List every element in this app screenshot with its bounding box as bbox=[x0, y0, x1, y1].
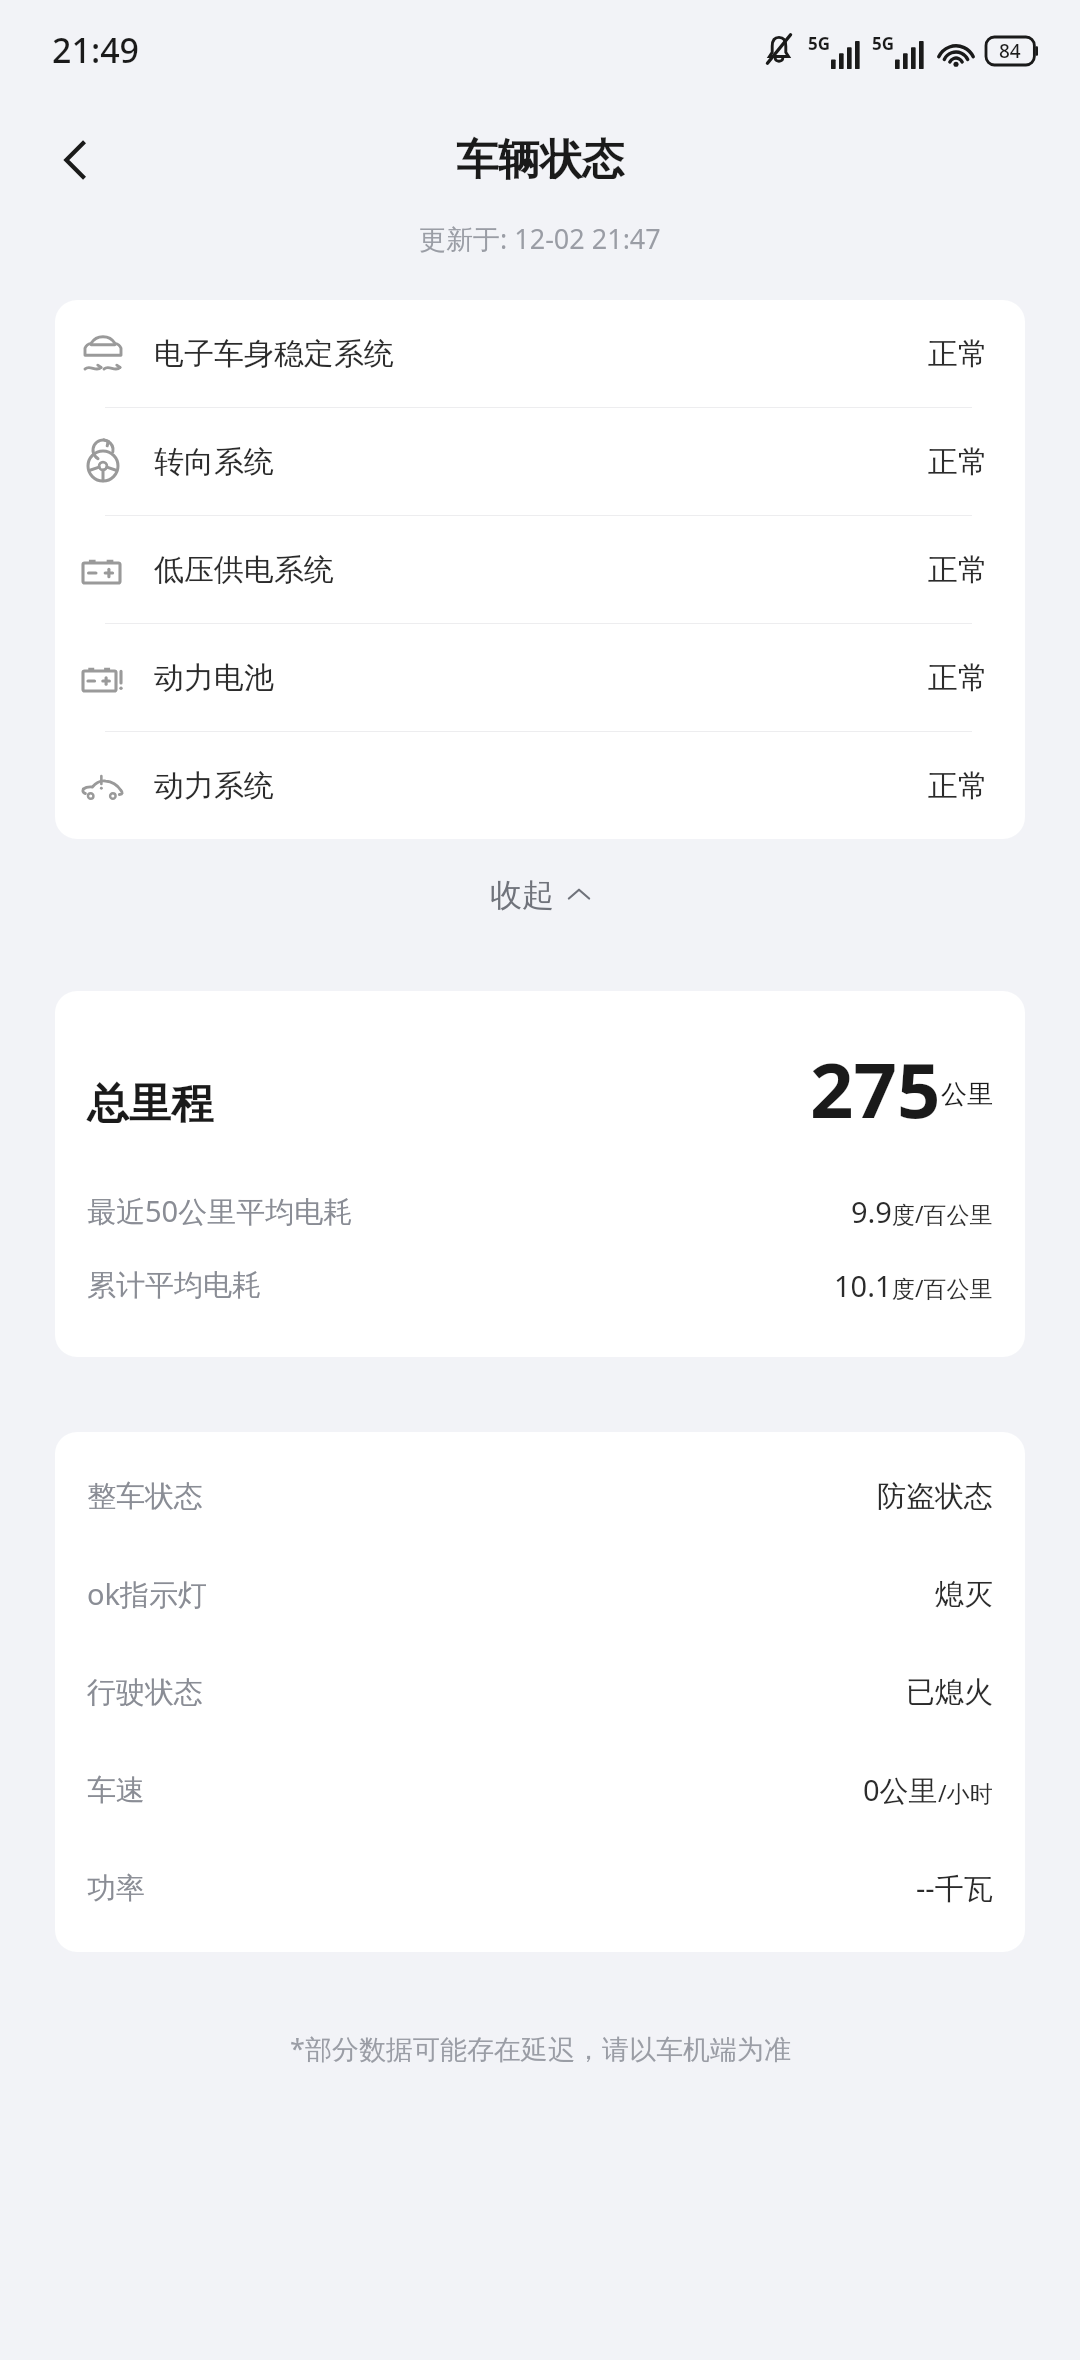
staticText: 整车状态 bbox=[87, 1478, 877, 1515]
staticText: 10.1 bbox=[834, 1266, 892, 1305]
staticText: 5G bbox=[872, 32, 895, 55]
button[interactable]: 低压供电系统 bbox=[55, 516, 1025, 623]
staticText: 正常 bbox=[928, 551, 988, 589]
staticText: 已熄火 bbox=[906, 1674, 993, 1711]
staticText: 21:49 bbox=[52, 27, 140, 73]
button[interactable]: 收起 bbox=[464, 861, 616, 929]
staticText: 正常 bbox=[928, 659, 988, 697]
staticText: 防盗状态 bbox=[877, 1478, 993, 1515]
staticText: 车辆状态 bbox=[456, 134, 624, 187]
button[interactable]: 动力系统 bbox=[55, 732, 1025, 839]
button[interactable]: 累计平均电耗 bbox=[87, 1251, 993, 1319]
button[interactable]: 整车状态 bbox=[87, 1462, 993, 1530]
staticText: *部分数据可能存在延迟，请以车机端为准 bbox=[290, 2030, 791, 2067]
button[interactable]: 最近50公里平均电耗 bbox=[87, 1177, 993, 1245]
button[interactable]: 总里程 bbox=[87, 1037, 993, 1141]
staticText: 275 bbox=[810, 1037, 941, 1141]
button[interactable]: Back bbox=[36, 120, 116, 200]
staticText: 累计平均电耗 bbox=[87, 1267, 834, 1304]
staticText: 0公里 bbox=[863, 1770, 938, 1810]
staticText: 5G bbox=[808, 32, 831, 55]
button[interactable]: 电子车身稳定系统 bbox=[55, 300, 1025, 407]
staticText: 最近50公里平均电耗 bbox=[87, 1191, 851, 1231]
staticText: 功率 bbox=[87, 1870, 916, 1907]
staticText: 电子车身稳定系统 bbox=[154, 335, 928, 373]
staticText: 公里 bbox=[941, 1078, 993, 1111]
staticText: 动力电池 bbox=[154, 659, 928, 697]
staticText: 总里程 bbox=[87, 1078, 213, 1131]
staticText: 更新于: 12-02 21:47 bbox=[419, 220, 661, 257]
staticText: ok指示灯 bbox=[87, 1574, 935, 1614]
staticText: --千瓦 bbox=[916, 1868, 993, 1908]
staticText: 度/百公里 bbox=[892, 1272, 993, 1303]
button[interactable]: 动力电池 bbox=[55, 624, 1025, 731]
staticText: /小时 bbox=[938, 1777, 993, 1808]
button[interactable]: 转向系统 bbox=[55, 408, 1025, 515]
staticText: 车速 bbox=[87, 1772, 863, 1809]
staticText: 熄灭 bbox=[935, 1576, 993, 1613]
staticText: 低压供电系统 bbox=[154, 551, 928, 589]
staticText: 转向系统 bbox=[154, 443, 928, 481]
button[interactable]: 行驶状态 bbox=[87, 1658, 993, 1726]
staticText: 收起 bbox=[490, 875, 554, 915]
button[interactable]: 车速 bbox=[87, 1756, 993, 1824]
staticText: 正常 bbox=[928, 443, 988, 481]
staticText: 84 bbox=[999, 38, 1021, 64]
staticText: 动力系统 bbox=[154, 767, 928, 805]
staticText: 行驶状态 bbox=[87, 1674, 906, 1711]
staticText: 度/百公里 bbox=[892, 1198, 993, 1229]
staticText: 正常 bbox=[928, 767, 988, 805]
button[interactable]: 功率 bbox=[87, 1854, 993, 1922]
staticText: 正常 bbox=[928, 335, 988, 373]
button[interactable]: ok指示灯 bbox=[87, 1560, 993, 1628]
staticText: 9.9 bbox=[851, 1192, 892, 1231]
